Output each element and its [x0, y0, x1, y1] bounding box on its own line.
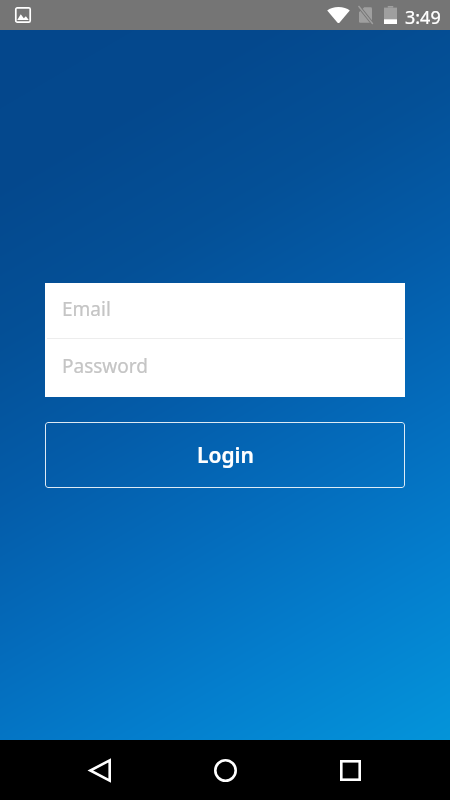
- button[interactable]: Email: [45, 283, 405, 338]
- staticText: 3:49: [405, 5, 441, 30]
- button[interactable]: Password: [45, 339, 405, 397]
- staticText: Login: [197, 441, 254, 470]
- button[interactable]: Login: [45, 422, 405, 488]
- staticText: Password: [62, 353, 148, 379]
- button[interactable]: Home: [195, 740, 255, 800]
- button[interactable]: Back: [70, 740, 130, 800]
- staticText: Email: [62, 296, 111, 322]
- button[interactable]: Recent apps: [320, 740, 380, 800]
